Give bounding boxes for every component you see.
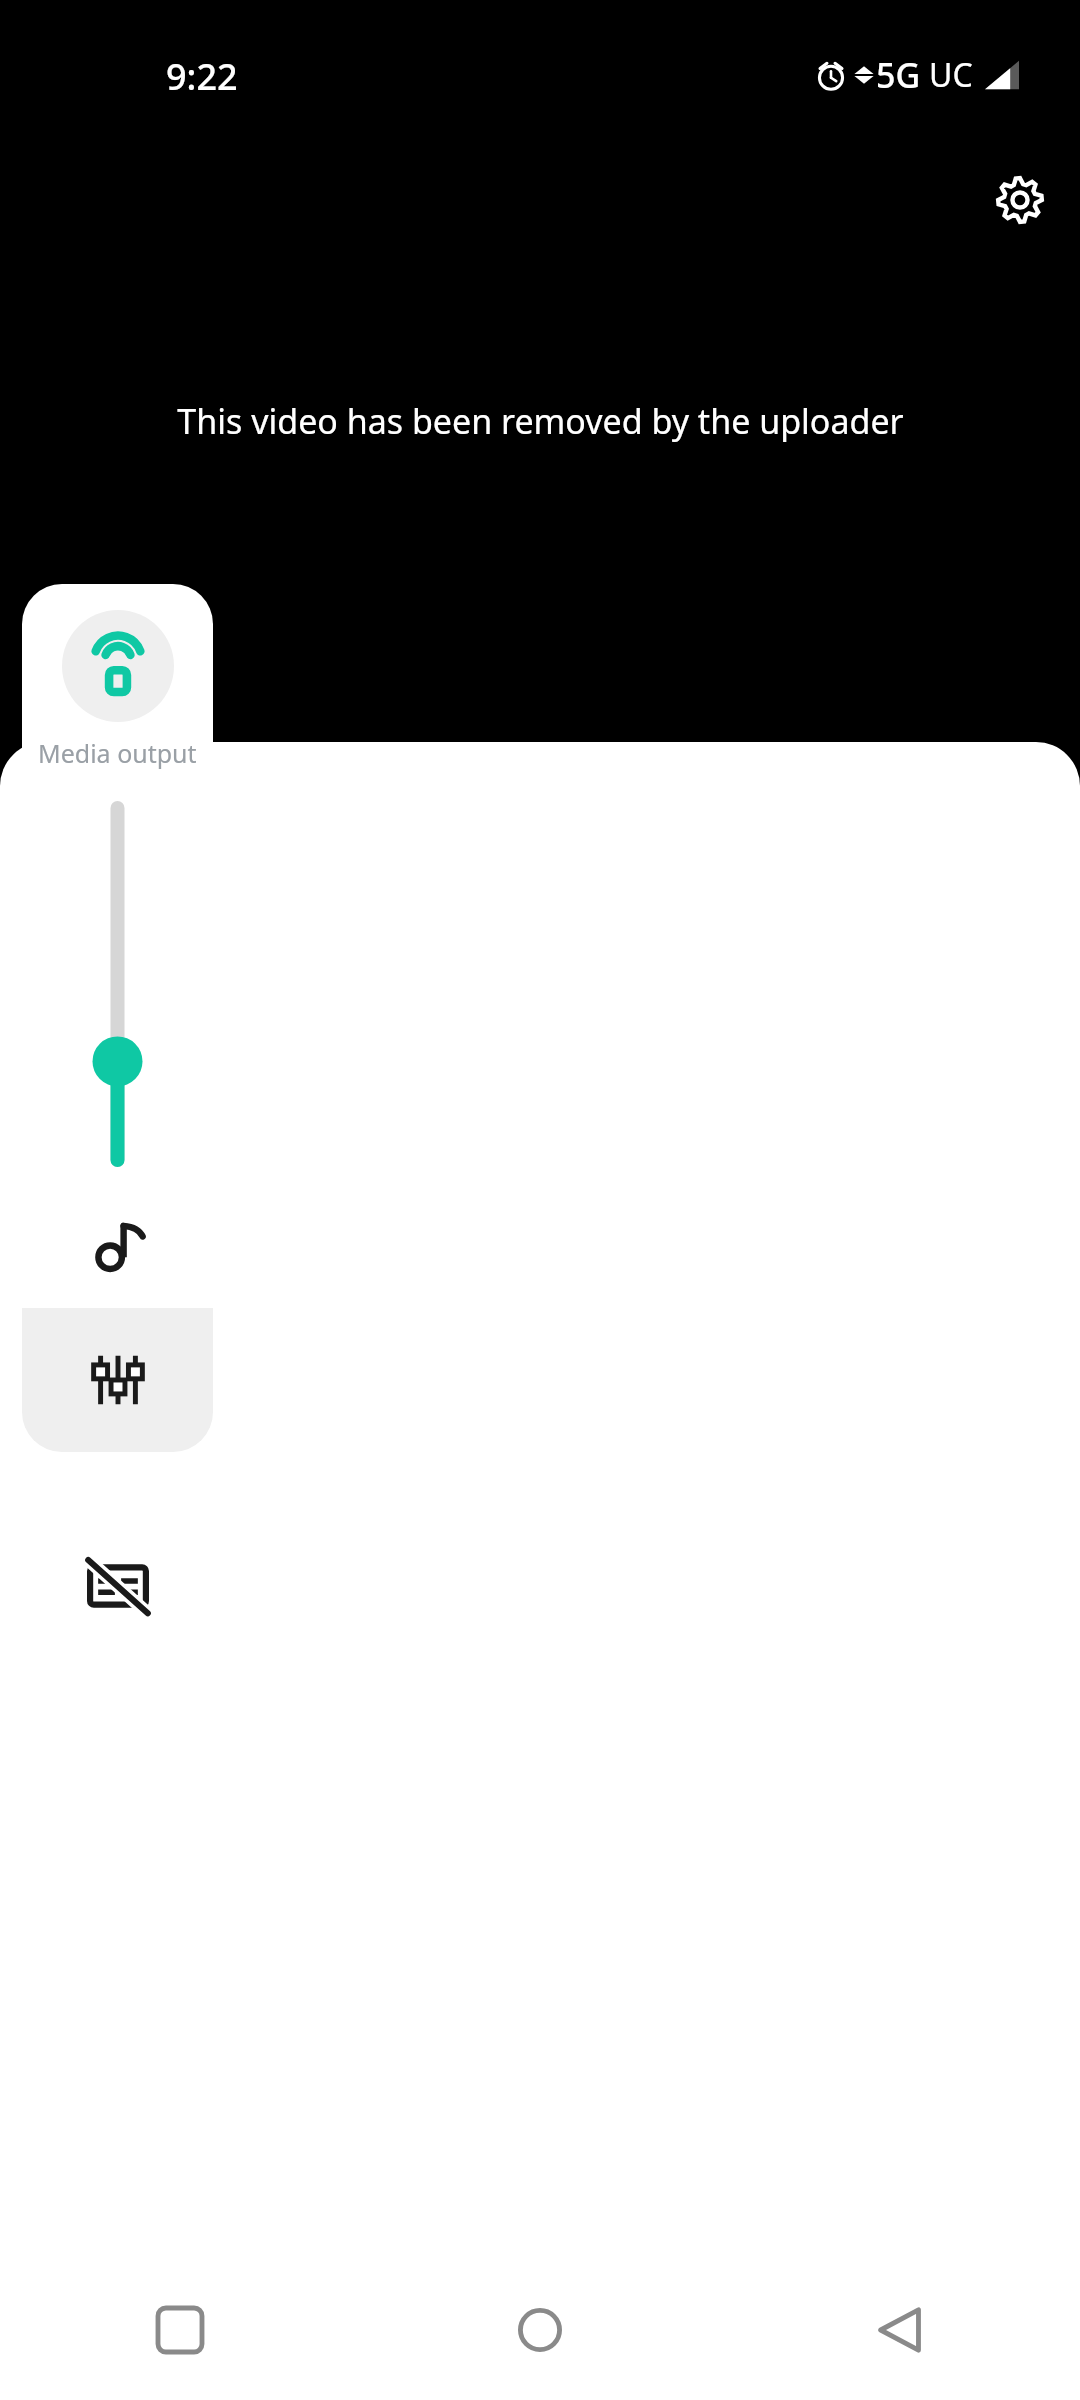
staticText: UC [929, 53, 973, 97]
staticText: This video has been removed by the uploa… [177, 398, 904, 444]
staticText: 5G [876, 52, 921, 98]
button[interactable]: Back [720, 2260, 1080, 2400]
staticText: Media output [38, 736, 197, 770]
button[interactable]: Volume [22, 784, 213, 1184]
button[interactable]: Media output [22, 584, 213, 784]
staticText: 9:22 [166, 52, 238, 101]
button[interactable]: Settings [966, 146, 1074, 254]
button[interactable]: Sound settings [22, 1308, 213, 1452]
button[interactable]: Closed captions off [22, 1490, 213, 1681]
button[interactable]: Media volume [22, 1184, 213, 1308]
button[interactable]: Home [360, 2260, 720, 2400]
button[interactable]: Recents [0, 2260, 360, 2400]
